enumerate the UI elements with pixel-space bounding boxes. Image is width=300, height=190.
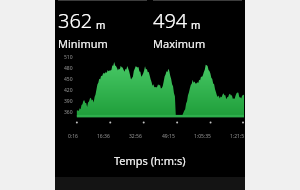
staticText: 450 [64,76,73,83]
staticText: 49:15 [162,133,175,140]
staticText: 360 [64,109,73,116]
staticText: Minimum [58,36,108,51]
staticText: 390 [64,98,73,105]
staticText: 32:56 [129,133,142,140]
staticText: 1:21:5 [230,133,245,140]
staticText: 0:16 [68,133,78,140]
staticText: 494 [153,7,188,34]
staticText: Maximum [153,36,206,51]
staticText: 480 [64,65,73,72]
button[interactable]: 494 [153,0,242,52]
staticText: Temps (h:m:s) [114,153,186,168]
staticText: 420 [64,87,73,94]
staticText: m [191,18,201,32]
staticText: 362 [58,7,93,34]
staticText: 16:36 [97,133,110,140]
staticText: 1:05:35 [194,133,211,140]
staticText: 510 [64,54,73,61]
staticText: m [96,18,106,32]
button[interactable]: 362 [58,0,147,52]
